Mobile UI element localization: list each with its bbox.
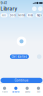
button[interactable]: Me <box>33 84 43 96</box>
staticText: Tags <box>36 14 41 17</box>
staticText: Continue <box>14 78 28 82</box>
staticText: Get started <box>11 55 27 58</box>
button[interactable]: Browse <box>10 84 21 96</box>
button[interactable]: Saved <box>21 84 33 96</box>
staticText: Home <box>1 91 7 93</box>
staticText: All <box>2 14 6 17</box>
staticText: Library <box>0 6 17 11</box>
staticText: Docs <box>10 14 16 17</box>
button[interactable]: Profile <box>38 6 43 11</box>
button[interactable]: Continue <box>0 78 42 83</box>
staticText: Files <box>28 14 33 17</box>
staticText: Me <box>37 91 40 93</box>
button[interactable]: Search <box>32 6 37 11</box>
staticText: Saved <box>25 91 30 93</box>
button[interactable]: Notes <box>18 13 25 17</box>
staticText: Notes <box>18 14 25 17</box>
button[interactable]: All <box>0 13 8 17</box>
button[interactable]: Home <box>0 84 10 96</box>
button[interactable]: Docs <box>9 13 16 17</box>
staticText: Browse <box>12 91 19 93</box>
staticText: 9:41 <box>0 1 6 5</box>
button[interactable]: Get started <box>10 54 29 59</box>
button[interactable]: Tags <box>35 13 43 17</box>
button[interactable]: Files <box>27 13 34 17</box>
button[interactable]: Account <box>37 54 41 59</box>
